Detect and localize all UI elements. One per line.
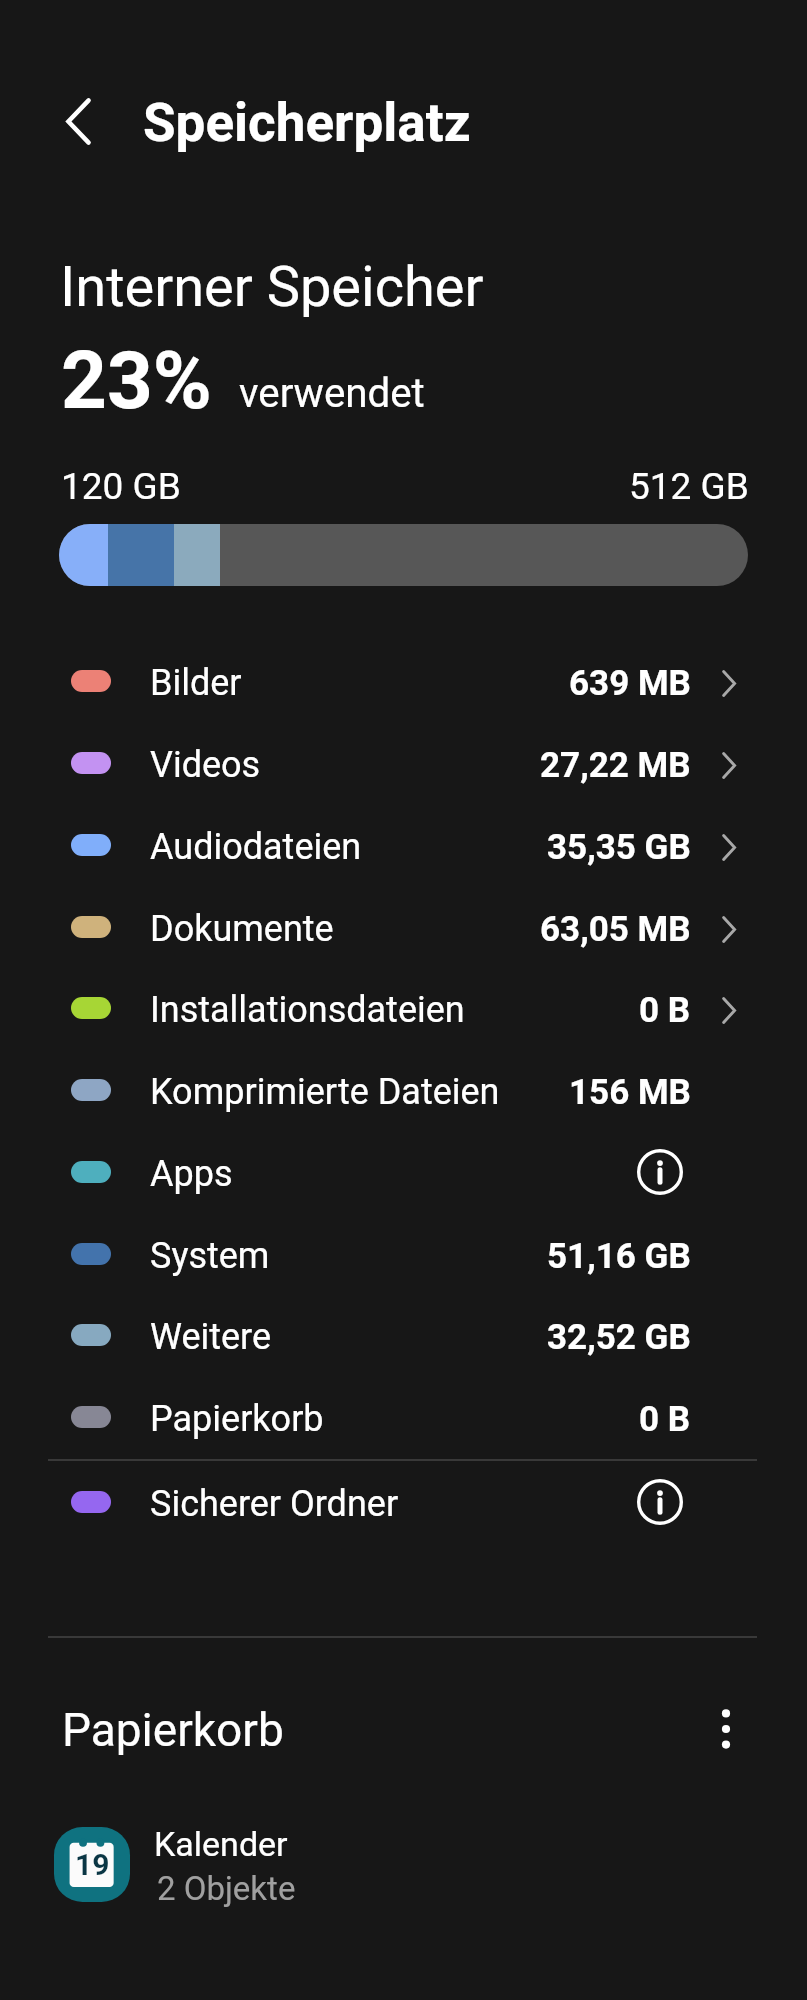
staticText: 512 GB bbox=[629, 465, 749, 508]
staticText: Installationsdateien bbox=[150, 989, 465, 1031]
staticText: Sicherer Ordner bbox=[150, 1483, 399, 1525]
staticText: Papierkorb bbox=[62, 1703, 284, 1757]
staticText: 63,05 MB bbox=[540, 909, 691, 950]
staticText: verwendet bbox=[239, 370, 425, 417]
staticText: 27,22 MB bbox=[540, 745, 691, 786]
staticText: 23% bbox=[61, 334, 212, 414]
button[interactable]: Dokumente bbox=[0, 888, 807, 970]
button[interactable]: Back bbox=[40, 83, 116, 159]
staticText: 639 MB bbox=[569, 663, 691, 704]
button[interactable]: Weitere bbox=[0, 1296, 807, 1378]
button[interactable]: Apps bbox=[0, 1133, 807, 1215]
staticText: 51,16 GB bbox=[547, 1236, 691, 1277]
staticText: 120 GB bbox=[61, 465, 181, 508]
staticText: Interner Speicher bbox=[60, 254, 484, 320]
staticText: 2 Objekte bbox=[157, 1869, 296, 1908]
staticText: 0 B bbox=[639, 990, 691, 1031]
staticText: Apps bbox=[150, 1153, 233, 1195]
button[interactable]: Sicherer Ordner bbox=[0, 1463, 807, 1545]
button[interactable]: Info bbox=[637, 1479, 683, 1525]
staticText: 0 B bbox=[639, 1399, 691, 1440]
staticText: 156 MB bbox=[569, 1072, 691, 1113]
button[interactable]: Bilder bbox=[0, 642, 807, 724]
staticText: 19 bbox=[75, 1847, 110, 1882]
staticText: 35,35 GB bbox=[547, 827, 691, 868]
staticText: Dokumente bbox=[150, 908, 334, 950]
staticText: Komprimierte Dateien bbox=[150, 1071, 500, 1113]
button[interactable]: Installationsdateien bbox=[0, 969, 807, 1051]
staticText: Bilder bbox=[150, 662, 242, 704]
staticText: Speicherplatz bbox=[143, 92, 471, 154]
staticText: Videos bbox=[150, 744, 261, 786]
button[interactable]: Info bbox=[637, 1149, 683, 1195]
staticText: 32,52 GB bbox=[547, 1317, 691, 1358]
button[interactable]: More options bbox=[690, 1693, 762, 1765]
button[interactable]: Audiodateien bbox=[0, 806, 807, 888]
staticText: Weitere bbox=[150, 1316, 272, 1358]
staticText: Audiodateien bbox=[150, 826, 362, 868]
staticText: System bbox=[150, 1235, 270, 1277]
button[interactable]: 19 bbox=[0, 1804, 807, 1924]
button[interactable]: Videos bbox=[0, 724, 807, 806]
button[interactable]: System bbox=[0, 1215, 807, 1297]
staticText: Kalender bbox=[154, 1824, 288, 1864]
staticText: Papierkorb bbox=[150, 1398, 324, 1440]
button[interactable]: Papierkorb bbox=[0, 1378, 807, 1460]
button[interactable]: Komprimierte Dateien bbox=[0, 1051, 807, 1133]
